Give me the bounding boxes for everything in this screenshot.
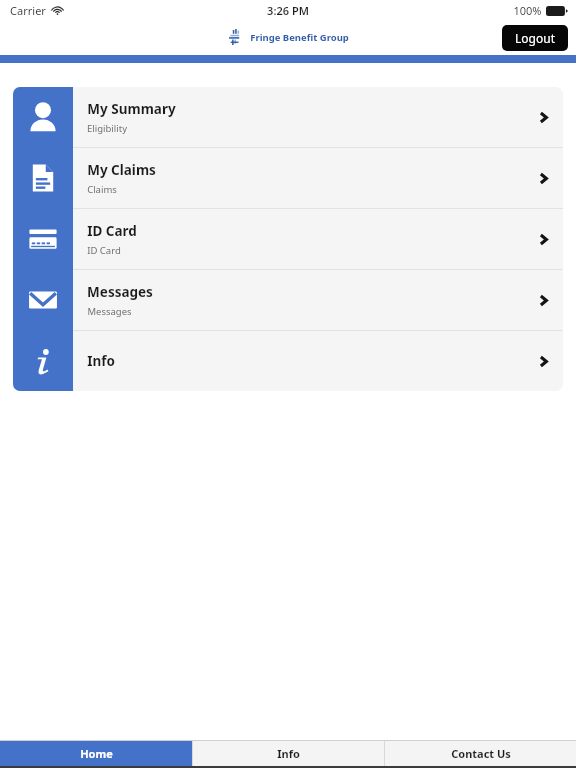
staticText: Contact Us (451, 746, 511, 761)
staticText: Eligibility (87, 122, 127, 135)
staticText: Info (87, 352, 115, 370)
staticText: Carrier (10, 3, 46, 18)
staticText: Messages (87, 283, 153, 301)
button[interactable]: Home (0, 741, 192, 766)
button[interactable]: Info (13, 331, 563, 391)
staticText: Claims (87, 183, 117, 196)
button[interactable]: Info (193, 741, 384, 766)
button[interactable]: My Claims (13, 148, 563, 208)
staticText: 3:26 PM (267, 3, 309, 18)
staticText: My Summary (87, 100, 176, 118)
staticText: ID Card (87, 244, 121, 257)
staticText: Logout (515, 30, 555, 46)
staticText: Fringe Benefit Group (250, 31, 349, 44)
staticText: ID Card (87, 222, 137, 240)
staticText: 100% (513, 3, 542, 18)
staticText: Info (277, 746, 300, 761)
staticText: Messages (87, 305, 132, 318)
staticText: Home (80, 746, 113, 761)
button[interactable]: Logout (502, 25, 568, 51)
button[interactable]: Contact Us (385, 741, 576, 766)
button[interactable]: Messages (13, 270, 563, 330)
button[interactable]: ID Card (13, 209, 563, 269)
staticText: My Claims (87, 161, 156, 179)
button[interactable]: My Summary (13, 87, 563, 147)
